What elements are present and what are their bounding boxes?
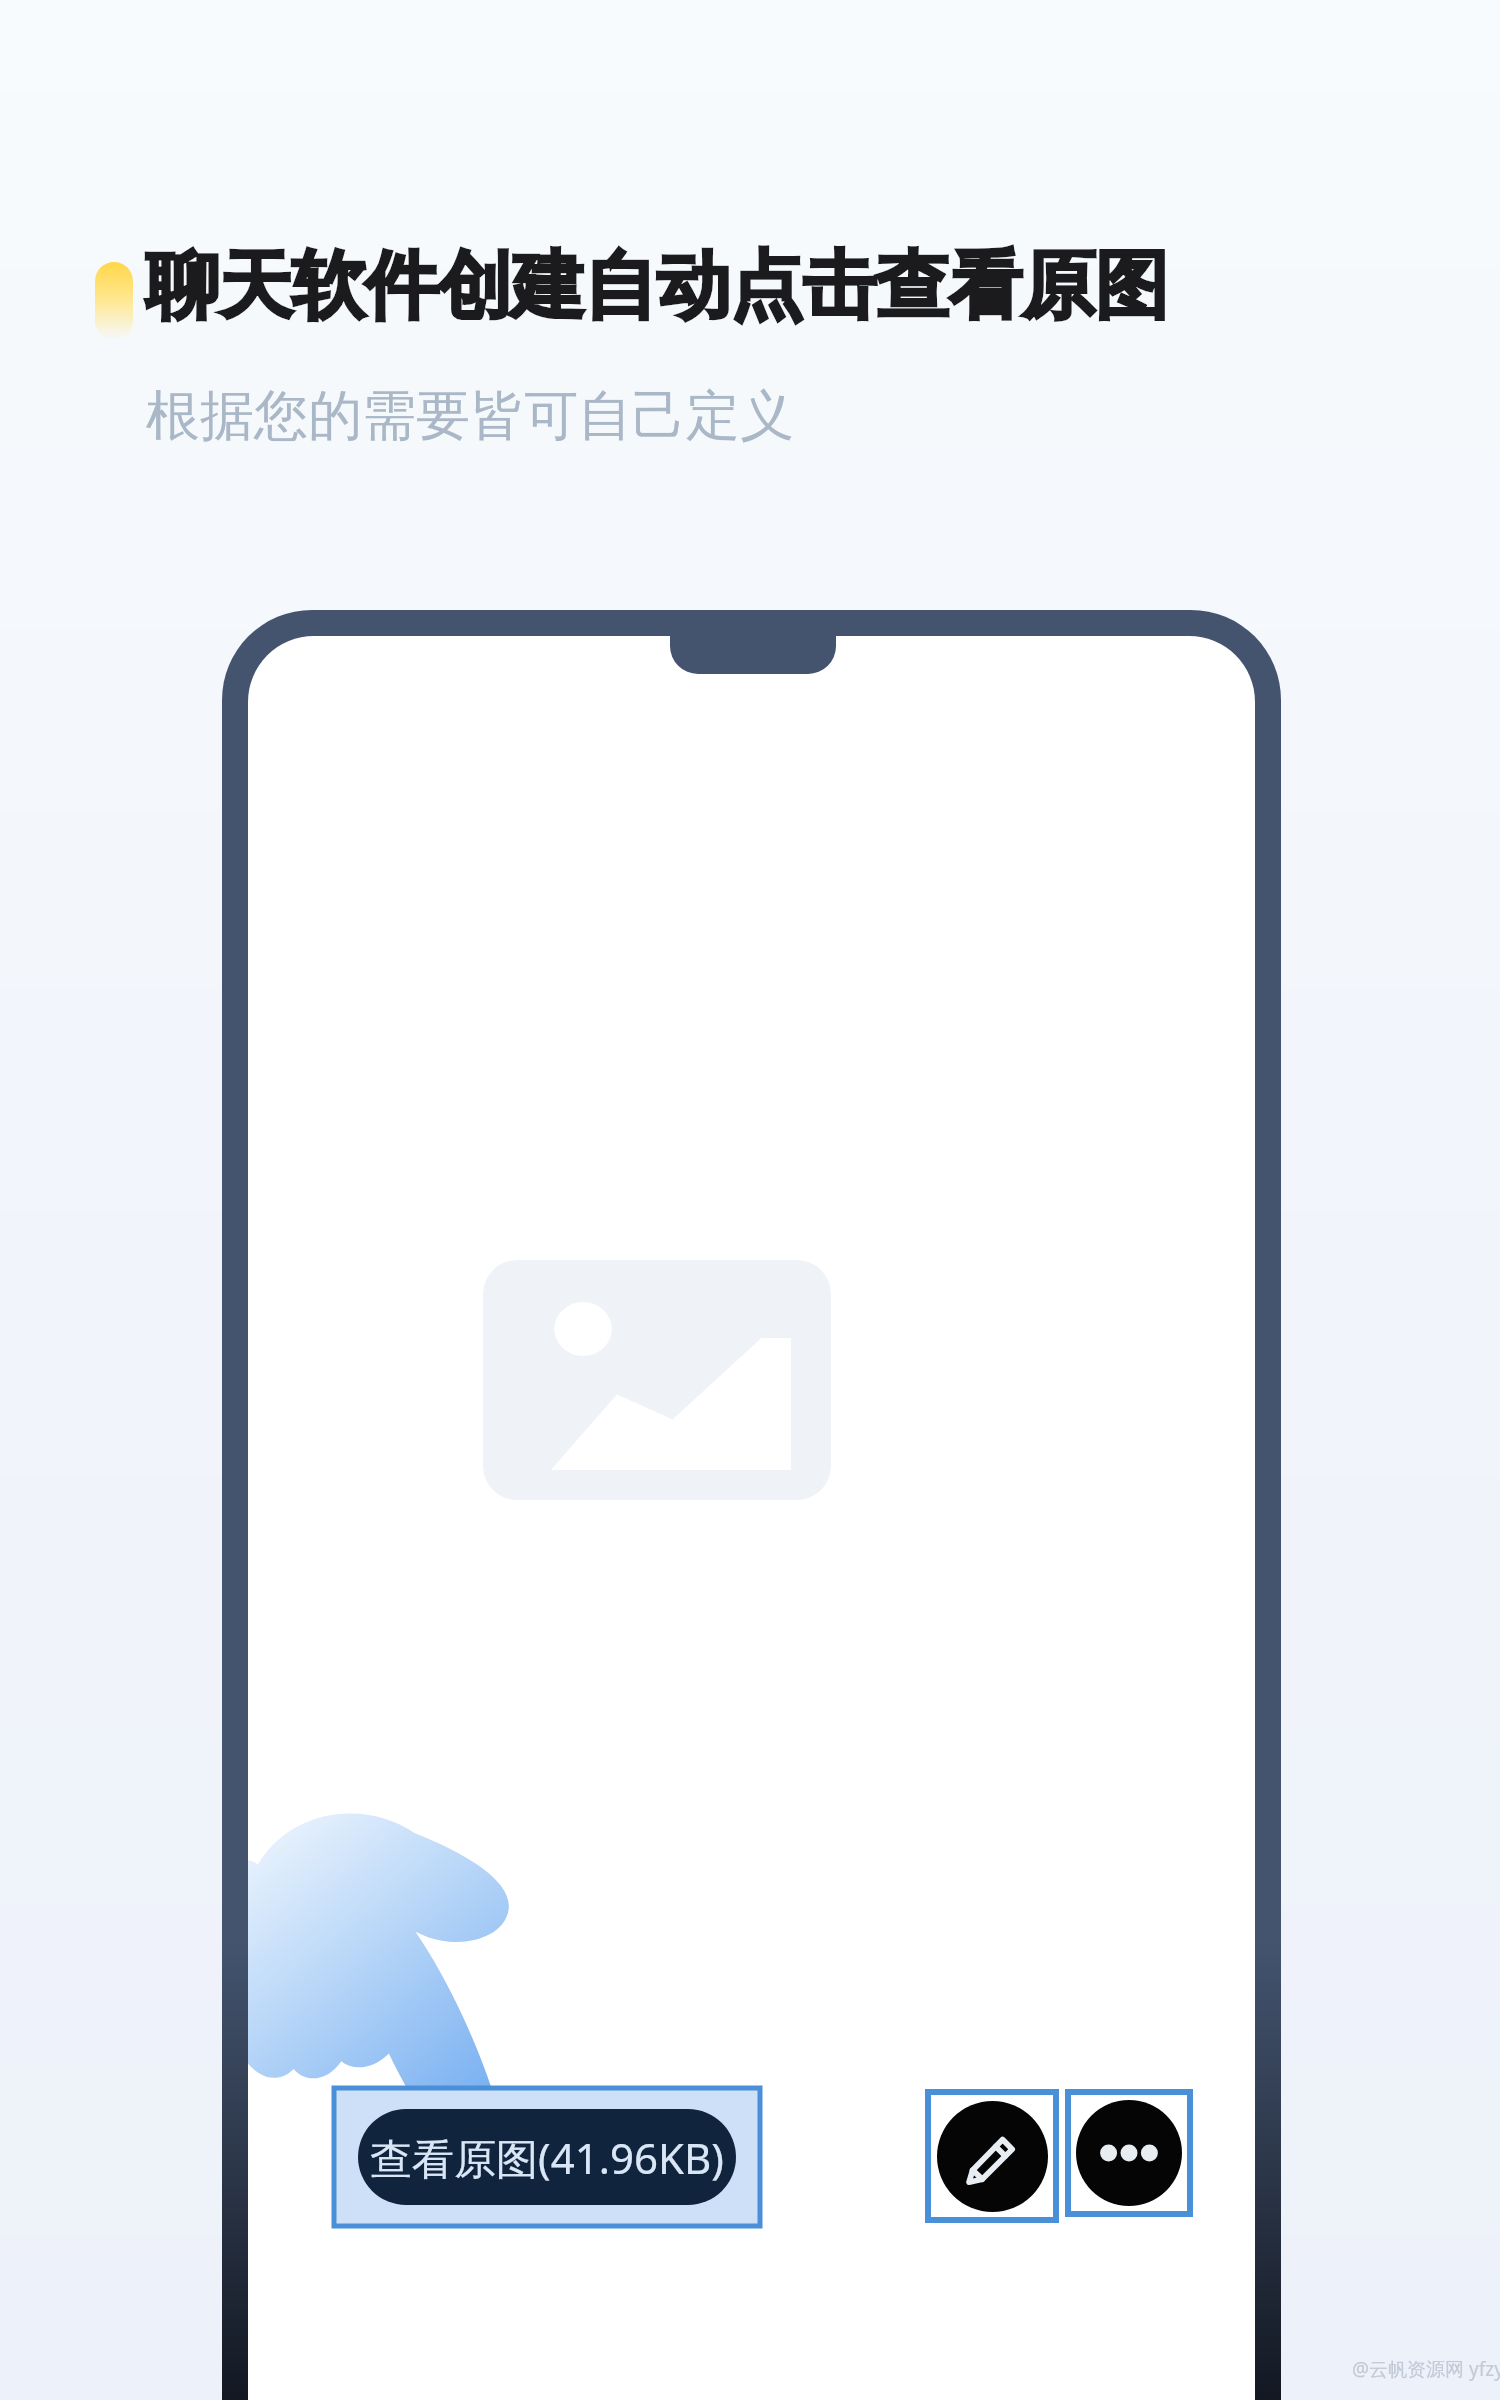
staticText: 查看原图(41.96KB) (370, 2129, 724, 2186)
staticText: 根据您的需要皆可自己定义 (146, 382, 794, 450)
button[interactable]: 查看原图(41.96KB) (358, 2109, 736, 2205)
staticText: @云帆资源网 yfzyw.com (1352, 2356, 1500, 2382)
button[interactable]: Edit (928, 2092, 1056, 2220)
staticText: 聊天软件创建自动点击查看原图 (146, 240, 1168, 333)
button[interactable]: More options (1068, 2092, 1190, 2214)
button[interactable]: 查看原图(41.96KB) (334, 2088, 760, 2226)
